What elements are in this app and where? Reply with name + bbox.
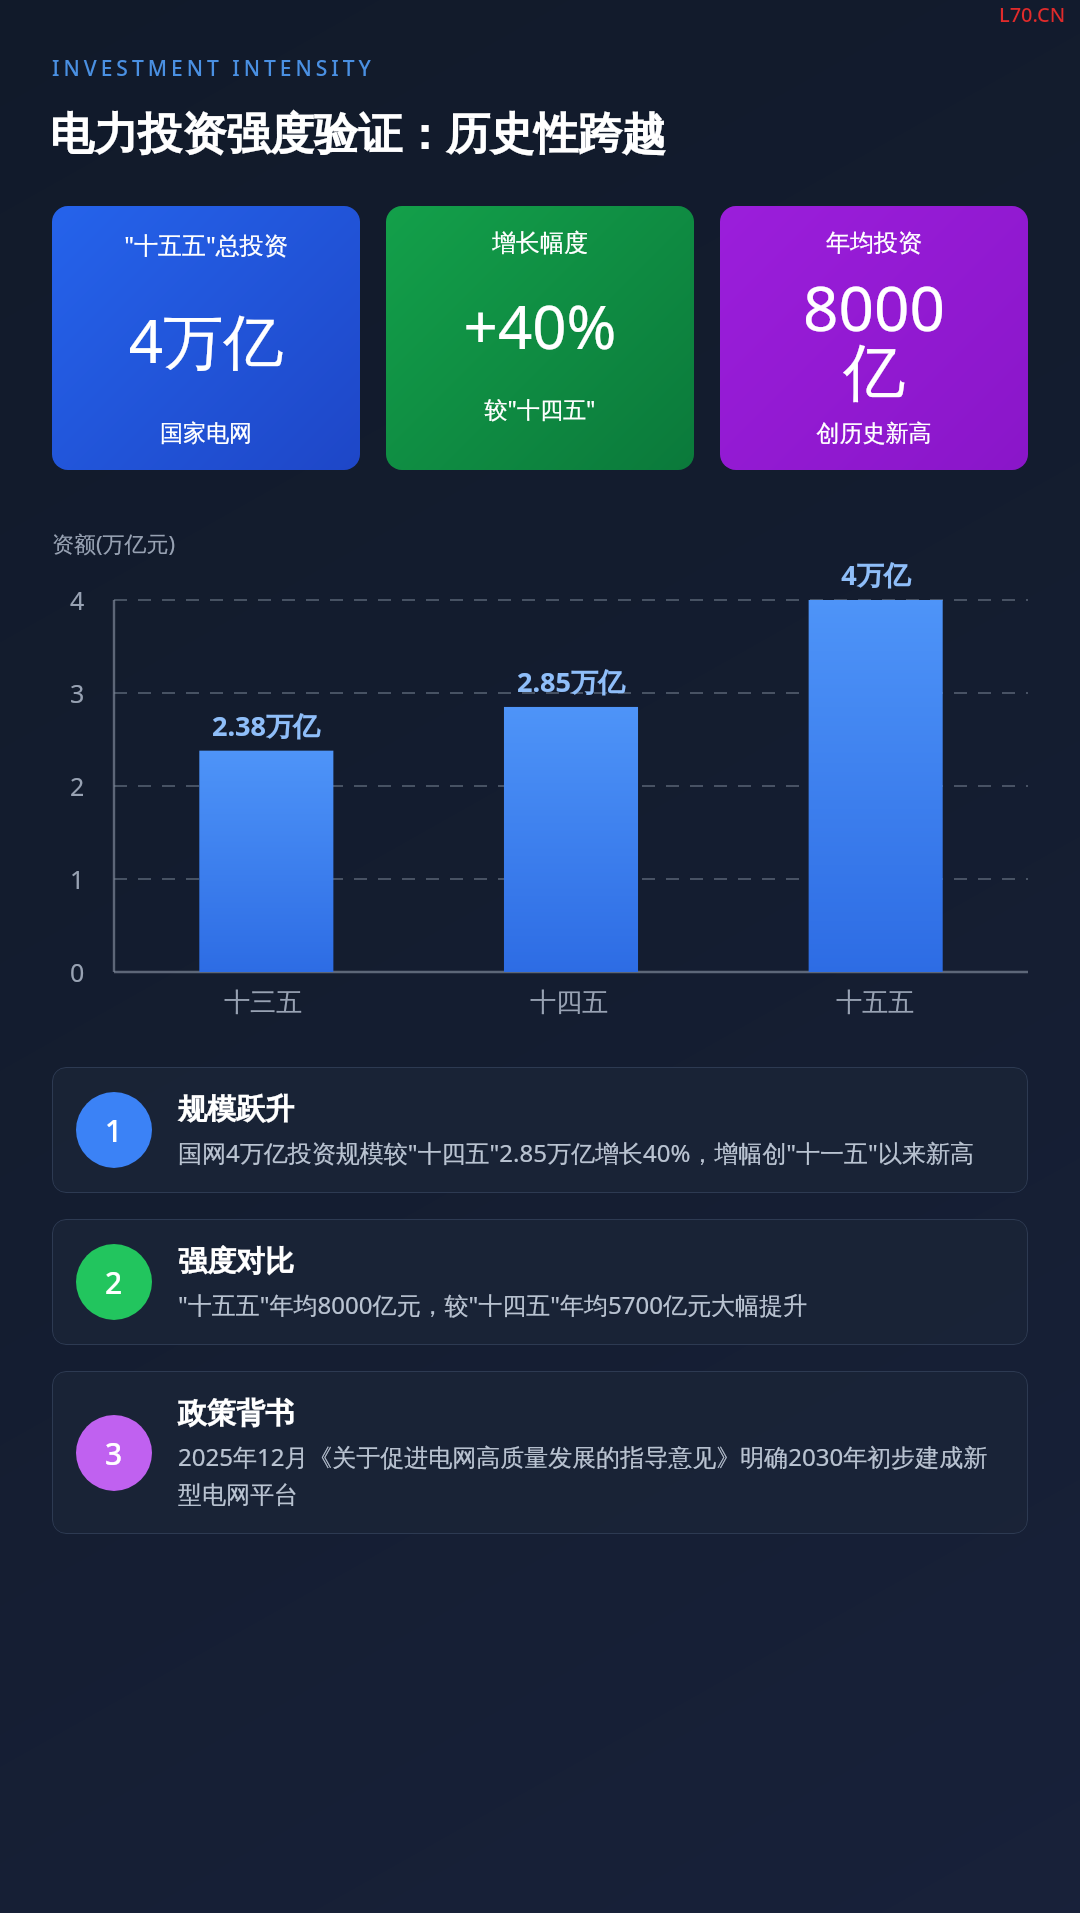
staticText: 规模跃升 [178, 1091, 294, 1128]
button[interactable]: 3 [52, 1371, 1028, 1534]
staticText: 2025年12月《关于促进电网高质量发展的指导意见》明确2030年初步建成新型电… [178, 1440, 1004, 1510]
staticText: 0 [70, 955, 85, 989]
staticText: 资额(万亿元) [52, 528, 176, 558]
staticText: INVESTMENT INTENSITY [52, 54, 375, 83]
button[interactable]: 增长幅度 +40% 较十四五 [386, 206, 694, 470]
staticText: 政策背书 [178, 1395, 294, 1432]
staticText: "十五五"总投资 [58, 228, 354, 261]
button[interactable]: 2 [52, 1219, 1028, 1345]
staticText: 2 [105, 1262, 123, 1303]
staticText: 国家电网 [58, 419, 354, 448]
staticText: 创历史新高 [726, 419, 1022, 448]
staticText: L70.CN [999, 1, 1066, 28]
button[interactable]: 1 [52, 1067, 1028, 1193]
staticText: +40% [392, 285, 688, 367]
staticText: 4万亿 [841, 556, 911, 593]
staticText: 2 [70, 769, 85, 803]
staticText: 增长幅度 [392, 228, 688, 258]
staticText: 十五五 [836, 986, 914, 1019]
staticText: 2.38万亿 [212, 707, 320, 744]
staticText: 1 [70, 862, 85, 896]
staticText: 强度对比 [178, 1243, 294, 1280]
staticText: 国网4万亿投资规模较"十四五"2.85万亿增长40%，增幅创"十一五"以来新高 [178, 1136, 974, 1169]
staticText: 3 [70, 676, 85, 710]
staticText: 4 [70, 583, 85, 617]
staticText: "十五五"年均8000亿元，较"十四五"年均5700亿元大幅提升 [178, 1288, 807, 1321]
staticText: 年均投资 [726, 228, 1022, 258]
staticText: 较"十四五" [392, 393, 688, 424]
staticText: 8000 亿 [726, 265, 1022, 412]
staticText: 十三五 [224, 986, 302, 1019]
button[interactable]: 十五五总投资 4万亿 国家电网 [52, 206, 360, 470]
staticText: 2.85万亿 [517, 663, 625, 700]
staticText: 4万亿 [58, 299, 354, 381]
staticText: 1 [105, 1110, 123, 1151]
staticText: 十四五 [530, 986, 608, 1019]
button[interactable]: 年均投资 8000亿 创历史新高 [720, 206, 1028, 470]
staticText: 3 [105, 1433, 123, 1474]
staticText: 电力投资强度验证：历史性跨越 [50, 107, 666, 162]
